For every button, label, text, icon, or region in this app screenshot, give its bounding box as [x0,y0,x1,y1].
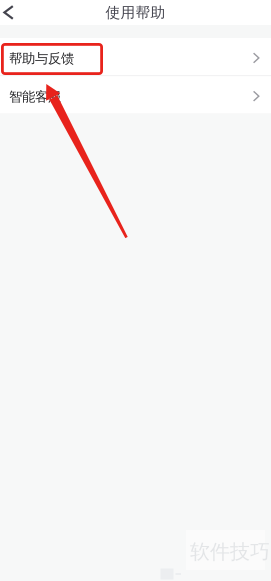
staticText: 使用帮助 [105,3,165,21]
button[interactable]: Back [0,0,23,25]
staticText: 帮助与反馈 [9,50,74,67]
staticText: 智能客服 [9,88,61,105]
staticText: 软件技巧 [190,539,270,564]
button[interactable]: 帮助与反馈 [0,38,271,75]
button[interactable]: 智能客服 [0,76,271,113]
